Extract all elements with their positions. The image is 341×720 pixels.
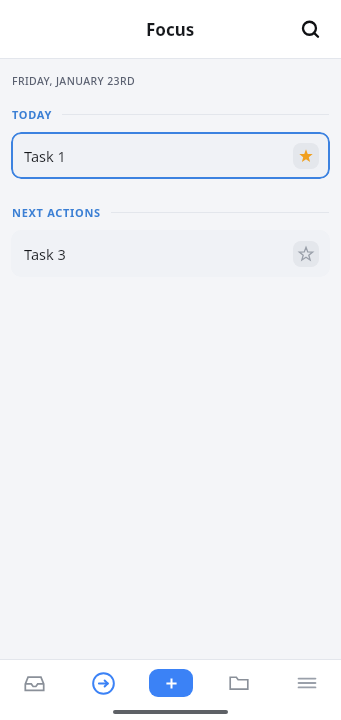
button[interactable]: Projects [205,659,273,707]
staticText: Task 1 [24,146,66,166]
button[interactable]: Star task [293,241,319,267]
button[interactable]: Unstar task [293,143,319,169]
button[interactable]: Task 3 [11,230,330,277]
button[interactable]: Next actions [69,659,137,707]
button[interactable]: Search [289,8,333,52]
staticText: TODAY [12,107,52,122]
button[interactable]: Inbox [0,659,69,707]
staticText: Focus [146,18,195,41]
staticText: FRIDAY, JANUARY 23RD [12,74,136,88]
staticText: Task 3 [24,244,66,264]
staticText: NEXT ACTIONS [12,205,101,220]
button[interactable]: Add task [137,659,205,707]
button[interactable]: Task 1 [11,132,330,179]
button[interactable]: Menu [273,659,341,707]
